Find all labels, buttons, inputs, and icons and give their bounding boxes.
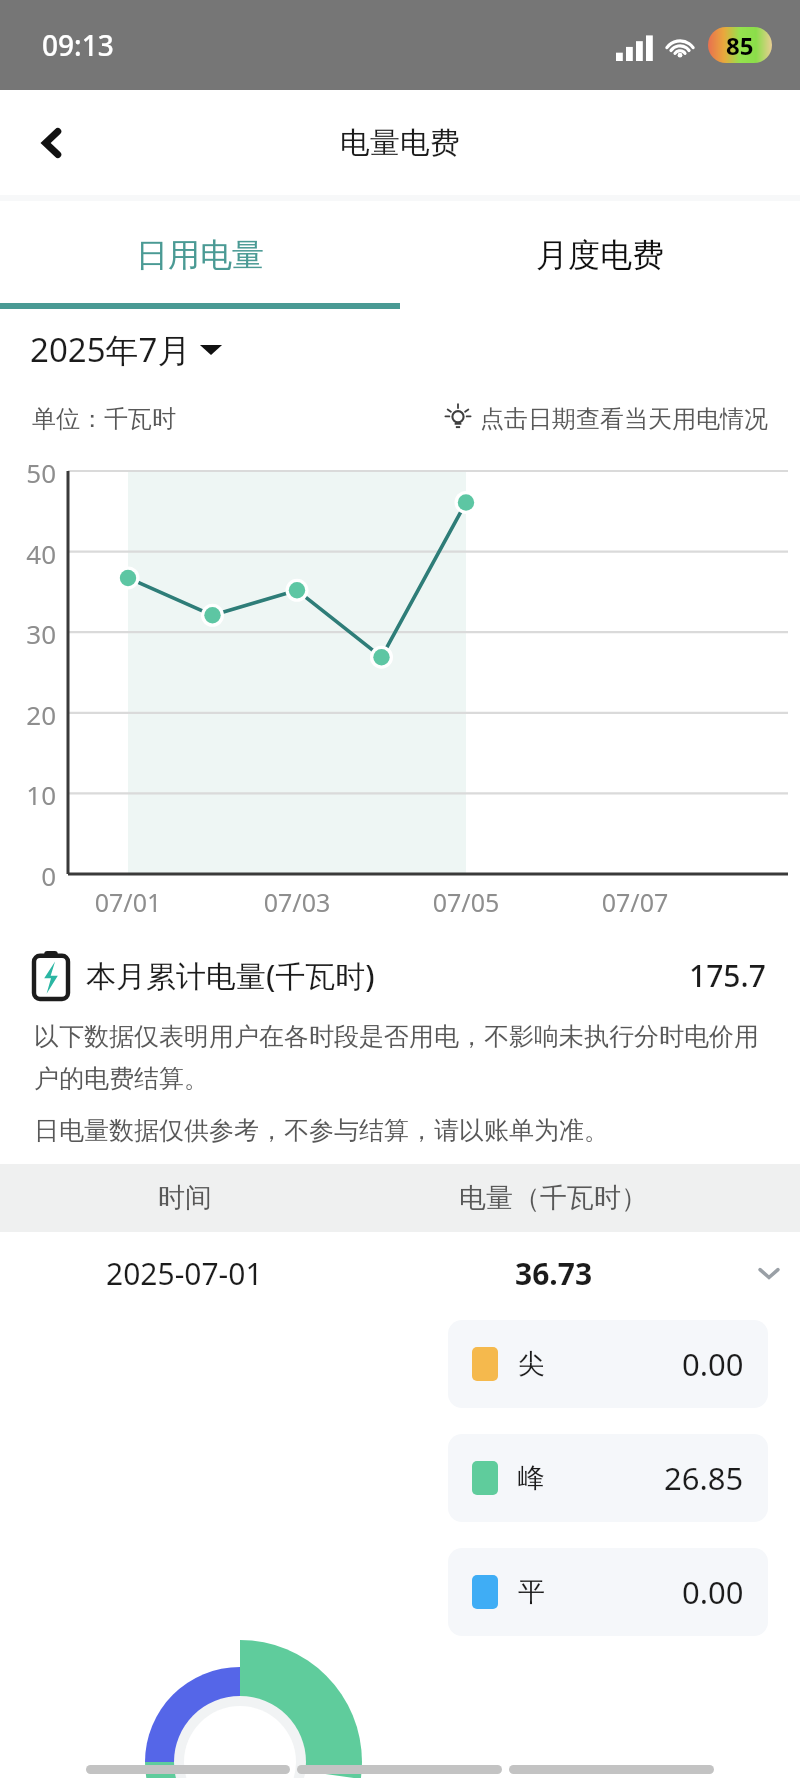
staticText: 07/07 [590,885,680,919]
staticText: 36.73 [515,1253,593,1294]
button[interactable]: 峰 [448,1434,768,1522]
button[interactable]: 2025-07-01 [0,1232,800,1314]
staticText: 2025年7月 [30,327,191,372]
button[interactable]: 平 [448,1548,768,1636]
staticText: 0 [0,858,56,893]
staticText: 电量电费 [340,124,460,162]
staticText: 日电量数据仅供参考，不参与结算，请以账单为准。 [34,1115,609,1146]
staticText: 40 [0,536,56,571]
staticText: 30 [0,616,56,651]
staticText: 单位：千瓦时 [32,404,176,434]
staticText: 电量（千瓦时） [459,1181,648,1215]
staticText: 85 [726,29,754,62]
staticText: 0.00 [682,1343,744,1385]
button[interactable]: Back [20,111,84,175]
button[interactable]: 日用电量 [0,201,400,309]
button[interactable]: 月度电费 [400,201,800,309]
staticText: 2025-07-01 [106,1253,263,1294]
staticText: 20 [0,697,56,732]
button[interactable]: 本月累计电量(千瓦时) [0,929,800,1021]
staticText: 07/01 [83,885,173,919]
staticText: 07/05 [421,885,511,919]
staticText: 09:13 [42,26,114,64]
button[interactable]: 点击日期查看当天用电情况 [444,404,768,434]
staticText: 点击日期查看当天用电情况 [480,404,768,434]
staticText: 175.7 [689,955,766,996]
staticText: 月度电费 [536,235,664,275]
staticText: 以下数据仅表明用户在各时段是否用电，不影响未执行分时电价用户的电费结算。 [34,1021,766,1095]
staticText: 日用电量 [136,235,264,275]
staticText: 50 [0,455,56,490]
staticText: 10 [0,777,56,812]
button[interactable]: 2025年7月 [0,309,800,389]
staticText: 本月累计电量(千瓦时) [86,955,375,996]
staticText: 0.00 [682,1571,744,1613]
staticText: 07/03 [252,885,342,919]
staticText: 平 [518,1575,545,1609]
staticText: 峰 [518,1461,545,1495]
staticText: 时间 [158,1181,212,1215]
staticText: 尖 [518,1347,545,1381]
staticText: 26.85 [664,1457,744,1499]
button[interactable]: 尖 [448,1320,768,1408]
